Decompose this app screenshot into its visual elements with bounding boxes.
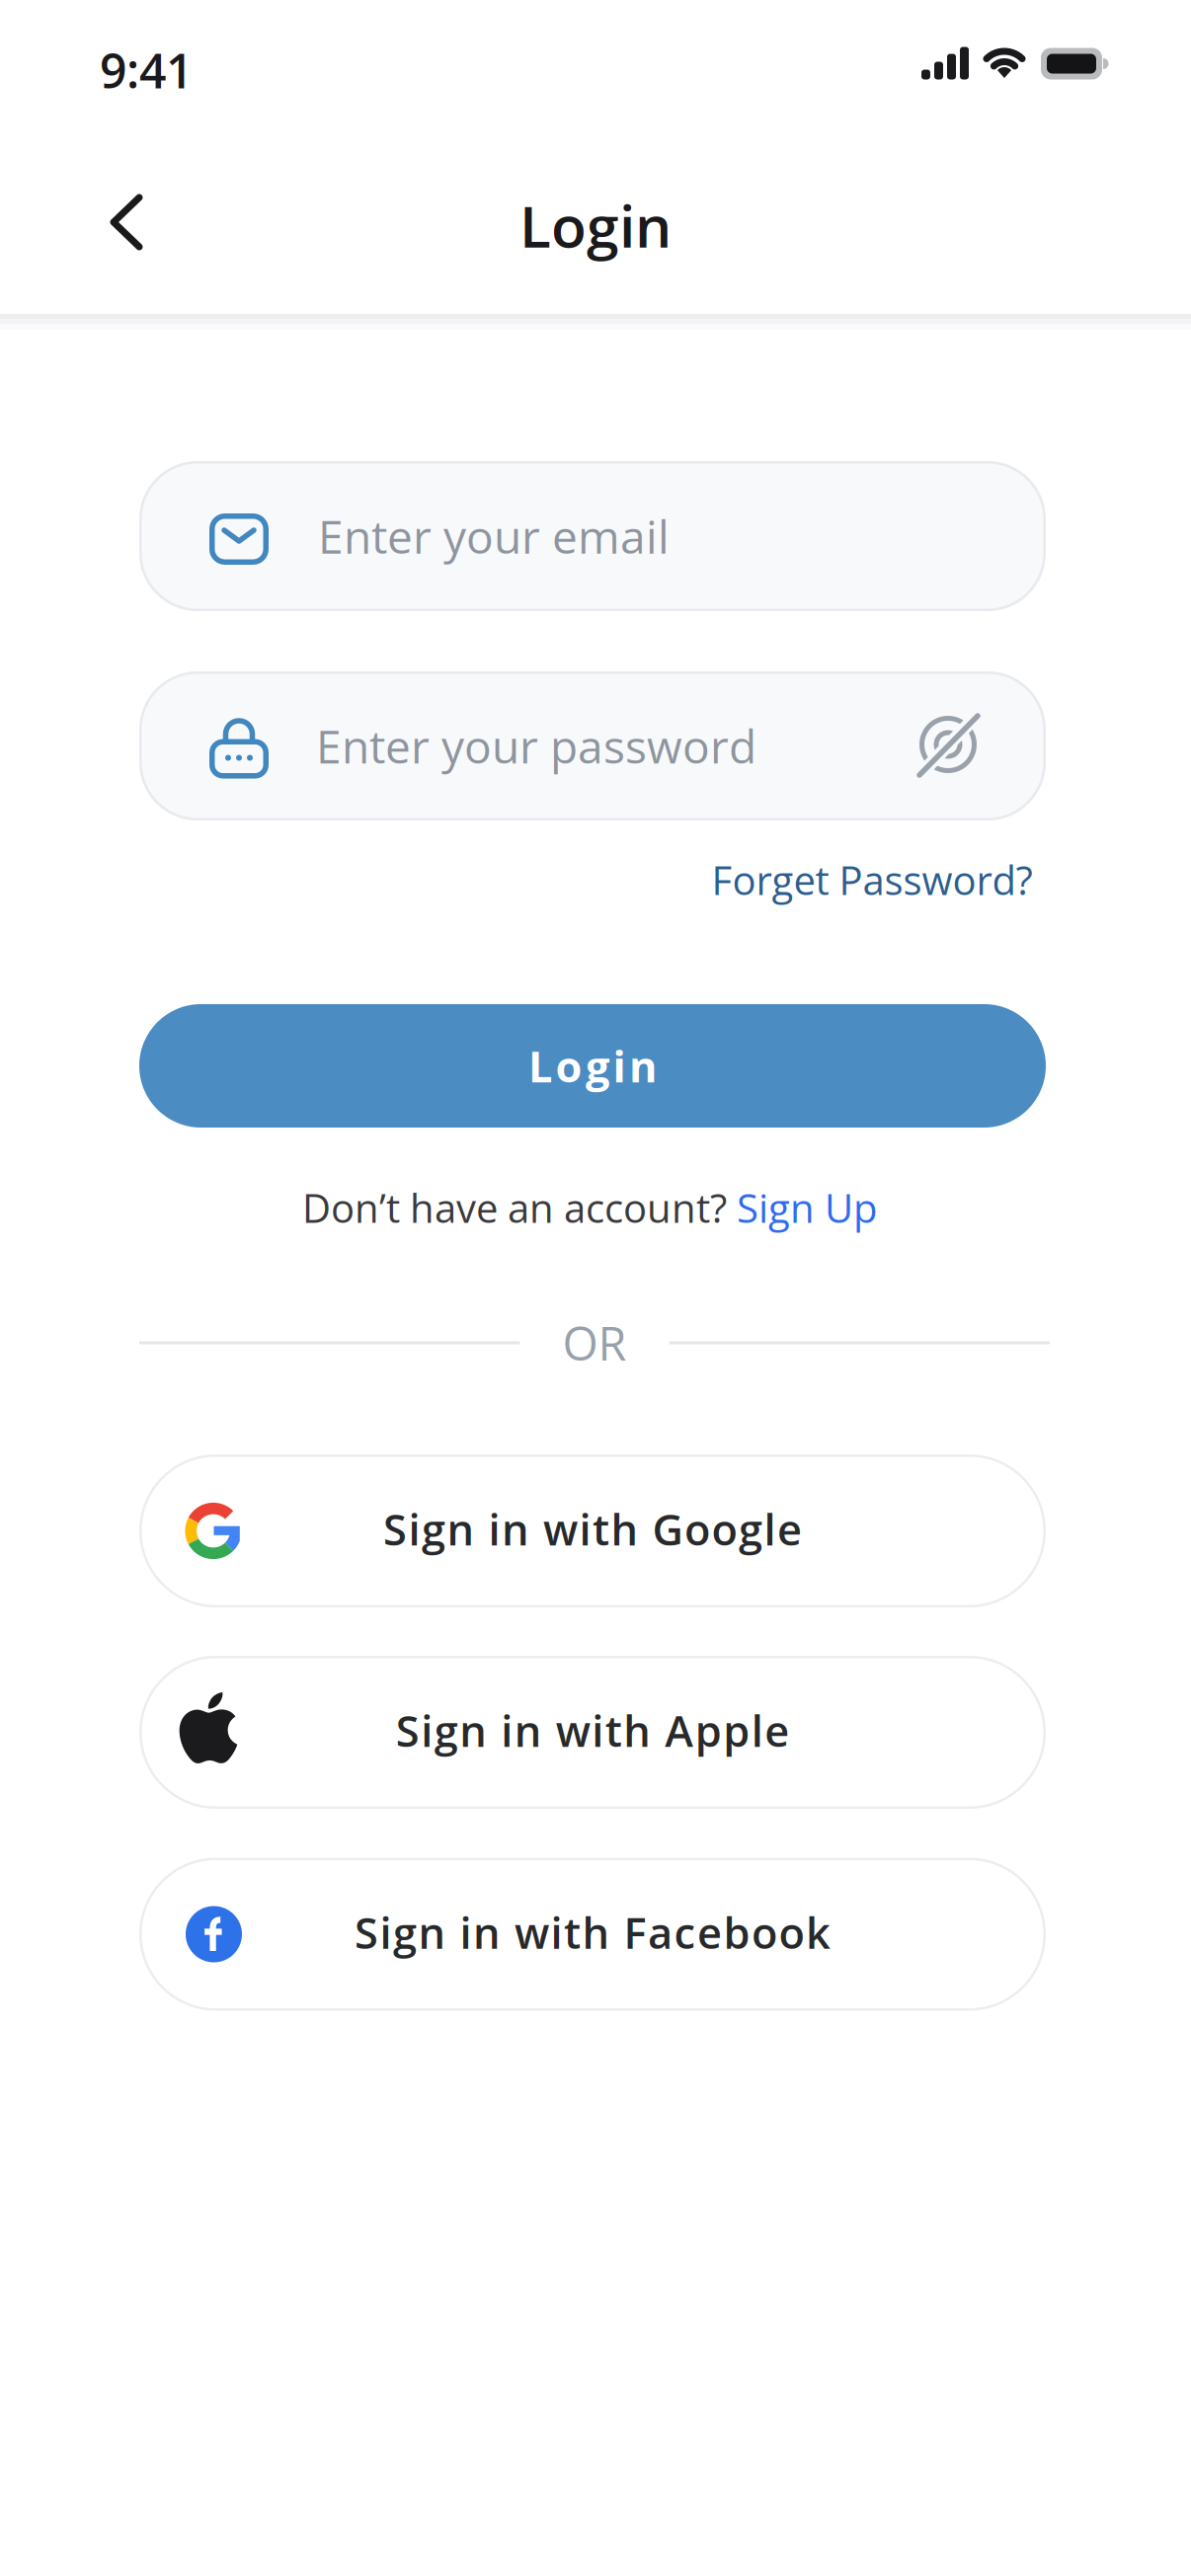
button[interactable]: Login <box>139 1004 1046 1128</box>
staticText: Enter your email <box>318 505 670 567</box>
staticText: Sign in with Apple <box>396 1701 789 1759</box>
staticText: OR <box>562 1311 627 1374</box>
staticText: Sign in with Google <box>383 1500 802 1558</box>
button[interactable]: Forget Password? <box>712 853 1032 907</box>
staticText: Sign Up <box>737 1181 877 1234</box>
button[interactable]: Enter your password <box>139 671 1046 820</box>
staticText: 9:41 <box>100 38 193 102</box>
staticText: Login <box>519 186 672 265</box>
button[interactable]: Sign in with Facebook <box>139 1858 1046 2011</box>
button[interactable]: Sign Up <box>737 1181 877 1234</box>
staticText: Enter your password <box>316 715 756 777</box>
button[interactable]: Back <box>97 193 156 252</box>
button[interactable]: Sign in with Apple <box>139 1656 1046 1809</box>
staticText: Forget Password? <box>712 853 1032 907</box>
button[interactable]: Show password <box>909 705 988 784</box>
staticText: Login <box>528 1037 657 1095</box>
staticText: Don’t have an account? <box>302 1181 737 1234</box>
button[interactable]: Enter your email <box>139 461 1046 611</box>
staticText: Sign in with Facebook <box>355 1903 831 1961</box>
button[interactable]: Sign in with Google <box>139 1454 1046 1607</box>
